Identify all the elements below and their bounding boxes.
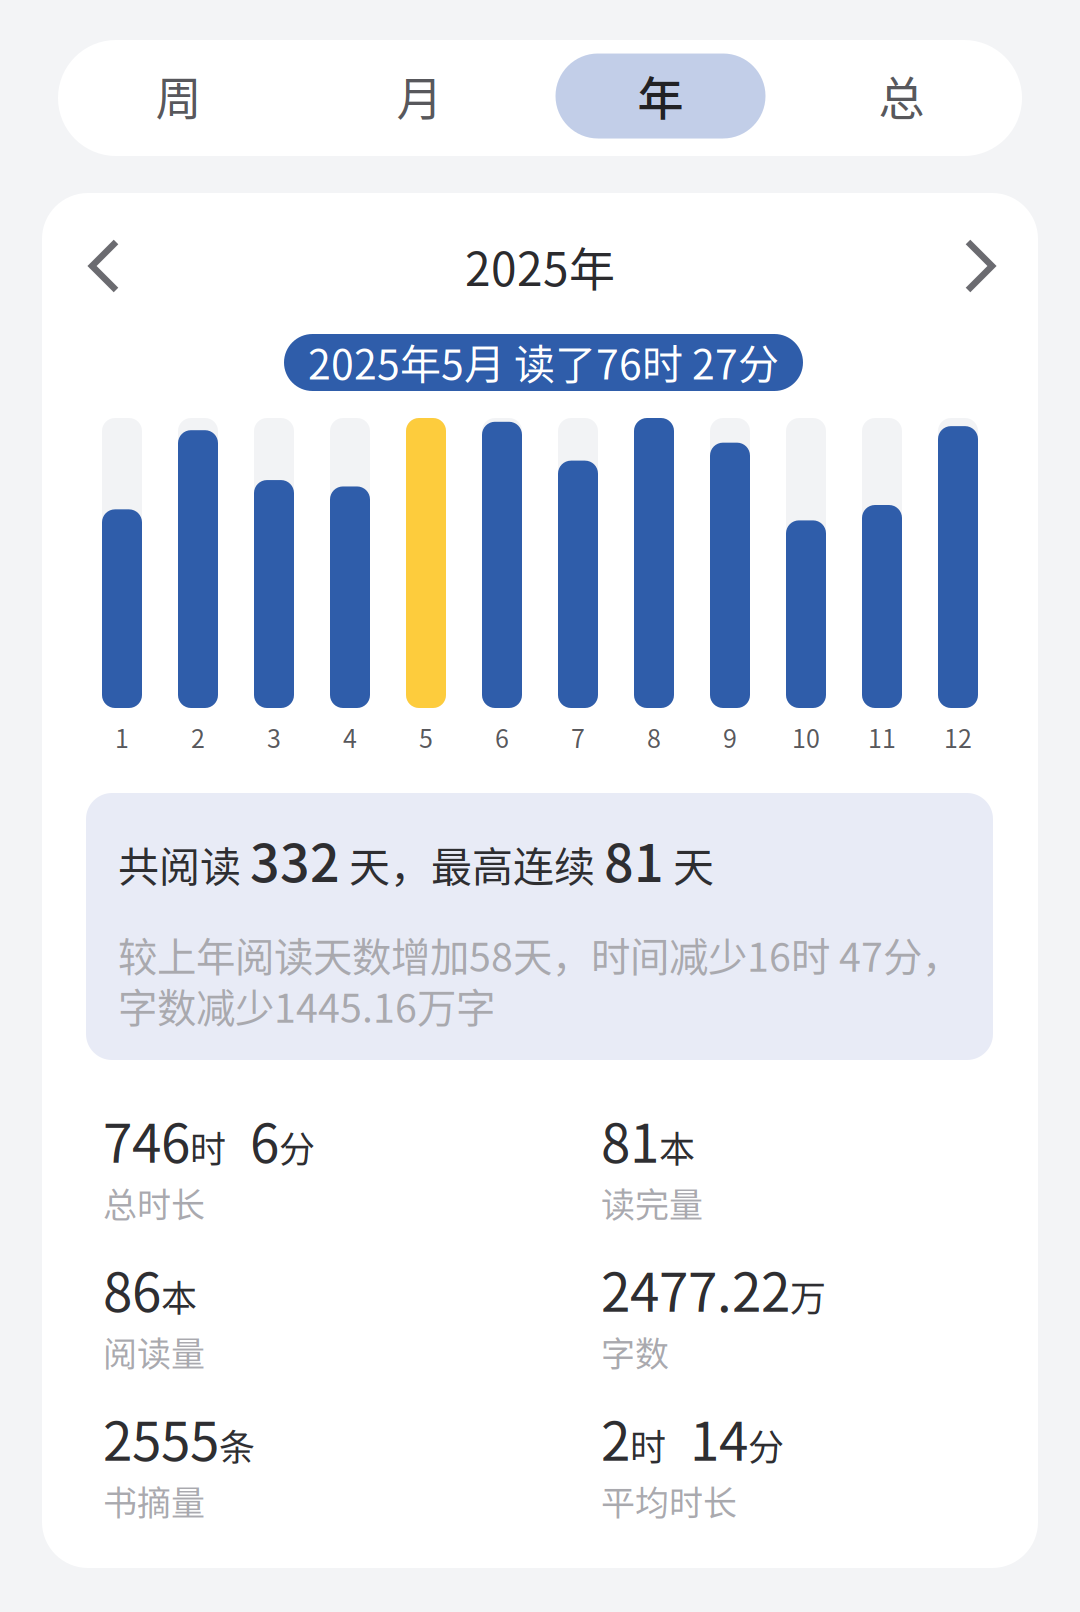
staticText: 9	[723, 719, 737, 755]
staticText: 总时长	[103, 1178, 205, 1227]
staticText: 12	[944, 719, 972, 755]
staticText: 6	[495, 719, 509, 755]
staticText: 较上年阅读天数增加58天，时间减少16时 47分，	[118, 926, 961, 983]
staticText: 万	[790, 1270, 826, 1322]
staticText: 共阅读	[118, 834, 250, 894]
staticText: 字数减少1445.16万字	[118, 977, 495, 1034]
staticText: 6	[226, 1101, 279, 1178]
staticText: 总	[878, 62, 924, 128]
staticText: 本	[659, 1121, 695, 1173]
staticText: 时	[630, 1419, 666, 1471]
staticText: 分	[748, 1419, 784, 1471]
staticText: 10	[792, 719, 820, 755]
staticText: 7	[571, 719, 585, 755]
staticText: 3	[267, 719, 281, 755]
staticText: 2555	[103, 1399, 219, 1476]
staticText: 14	[666, 1399, 748, 1476]
staticText: 2025年	[465, 233, 615, 299]
staticText: 平均时长	[601, 1476, 737, 1525]
staticText: 746	[103, 1101, 190, 1178]
staticText: 天	[664, 834, 714, 894]
staticText: 86	[103, 1250, 161, 1327]
staticText: 1	[115, 719, 129, 755]
button[interactable]: 周	[58, 40, 299, 156]
button[interactable]: 总	[781, 40, 1022, 156]
button[interactable]: Next year	[934, 224, 1026, 308]
staticText: 2477.22	[601, 1250, 790, 1327]
staticText: 周	[155, 62, 201, 128]
staticText: 81	[604, 822, 664, 897]
staticText: 5	[419, 719, 433, 755]
staticText: 天，最高连续	[340, 834, 604, 894]
staticText: 2	[191, 719, 205, 755]
staticText: 81	[601, 1101, 659, 1178]
button[interactable]: 月	[299, 40, 540, 156]
staticText: 332	[250, 822, 340, 897]
staticText: 2	[601, 1399, 630, 1476]
staticText: 4	[343, 719, 357, 755]
staticText: 阅读量	[103, 1327, 205, 1376]
staticText: 本	[161, 1270, 197, 1322]
staticText: 分	[279, 1121, 315, 1173]
staticText: 书摘量	[103, 1476, 205, 1525]
staticText: 2025年5月 读了76时 27分	[308, 332, 779, 391]
staticText: 条	[219, 1419, 255, 1471]
staticText: 8	[647, 719, 661, 755]
staticText: 月	[396, 62, 442, 128]
button[interactable]: Previous year	[58, 224, 150, 308]
staticText: 11	[868, 719, 896, 755]
staticText: 读完量	[601, 1178, 703, 1227]
button[interactable]: 年	[540, 40, 781, 156]
staticText: 年	[637, 62, 683, 128]
staticText: 时	[190, 1121, 226, 1173]
staticText: 字数	[601, 1327, 669, 1376]
